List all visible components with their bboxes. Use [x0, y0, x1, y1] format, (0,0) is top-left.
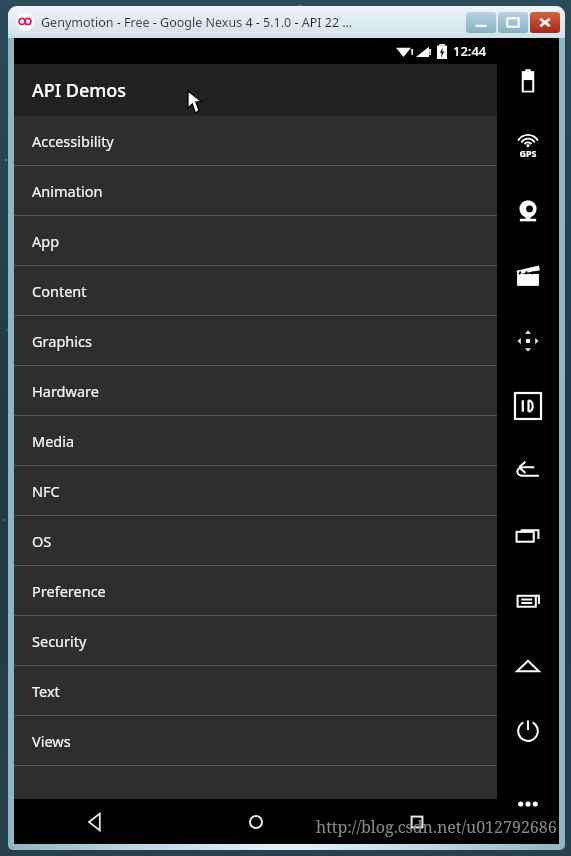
- button[interactable]: Accessibility: [14, 116, 497, 165]
- button[interactable]: OS: [14, 516, 497, 565]
- button[interactable]: Menu: [497, 568, 559, 633]
- button[interactable]: Battery: [497, 48, 559, 113]
- staticText: Preference: [32, 581, 106, 601]
- staticText: !: [411, 45, 414, 57]
- button[interactable]: Text: [14, 666, 497, 715]
- button[interactable]: Rotate / D-pad: [497, 308, 559, 373]
- button[interactable]: Recents: [336, 799, 497, 844]
- button[interactable]: Home: [175, 799, 336, 844]
- staticText: API Demos: [32, 78, 127, 103]
- button[interactable]: Security: [14, 616, 497, 665]
- staticText: 12:44: [453, 42, 487, 60]
- button[interactable]: Preference: [14, 566, 497, 615]
- button[interactable]: NFC: [14, 466, 497, 515]
- staticText: Graphics: [32, 331, 92, 351]
- staticText: OS: [32, 531, 52, 551]
- button[interactable]: Graphics: [14, 316, 497, 365]
- staticText: GPS: [519, 147, 537, 159]
- button[interactable]: Home: [497, 633, 559, 698]
- button[interactable]: Identifiers: [497, 373, 559, 438]
- button[interactable]: Content: [14, 266, 497, 315]
- button[interactable]: More: [497, 771, 559, 836]
- button[interactable]: Video recording: [497, 243, 559, 308]
- button[interactable]: Recents: [497, 503, 559, 568]
- staticText: Views: [32, 731, 71, 751]
- button[interactable]: App: [14, 216, 497, 265]
- button[interactable]: Maximize: [498, 12, 528, 33]
- button[interactable]: Camera: [497, 178, 559, 243]
- button[interactable]: Back: [497, 438, 559, 503]
- staticText: App: [32, 231, 60, 251]
- staticText: NFC: [32, 481, 60, 501]
- staticText: Hardware: [32, 381, 99, 401]
- button[interactable]: Hardware: [14, 366, 497, 415]
- staticText: Security: [32, 631, 87, 651]
- button[interactable]: Back: [14, 799, 175, 844]
- staticText: Genymotion - Free - Google Nexus 4 - 5.1…: [41, 14, 353, 31]
- staticText: !: [429, 45, 432, 57]
- staticText: http://blog.csdn.net/u012792686: [316, 816, 557, 838]
- button[interactable]: GPS: [497, 113, 559, 178]
- button[interactable]: Views: [14, 716, 497, 765]
- staticText: Media: [32, 431, 75, 451]
- staticText: Animation: [32, 181, 103, 201]
- staticText: Content: [32, 281, 87, 301]
- staticText: Accessibility: [32, 131, 114, 151]
- button[interactable]: Power: [497, 698, 559, 763]
- button[interactable]: Animation: [14, 166, 497, 215]
- button[interactable]: Media: [14, 416, 497, 465]
- staticText: Text: [32, 681, 60, 701]
- button[interactable]: Minimize: [466, 12, 496, 33]
- button[interactable]: Close: [530, 12, 560, 33]
